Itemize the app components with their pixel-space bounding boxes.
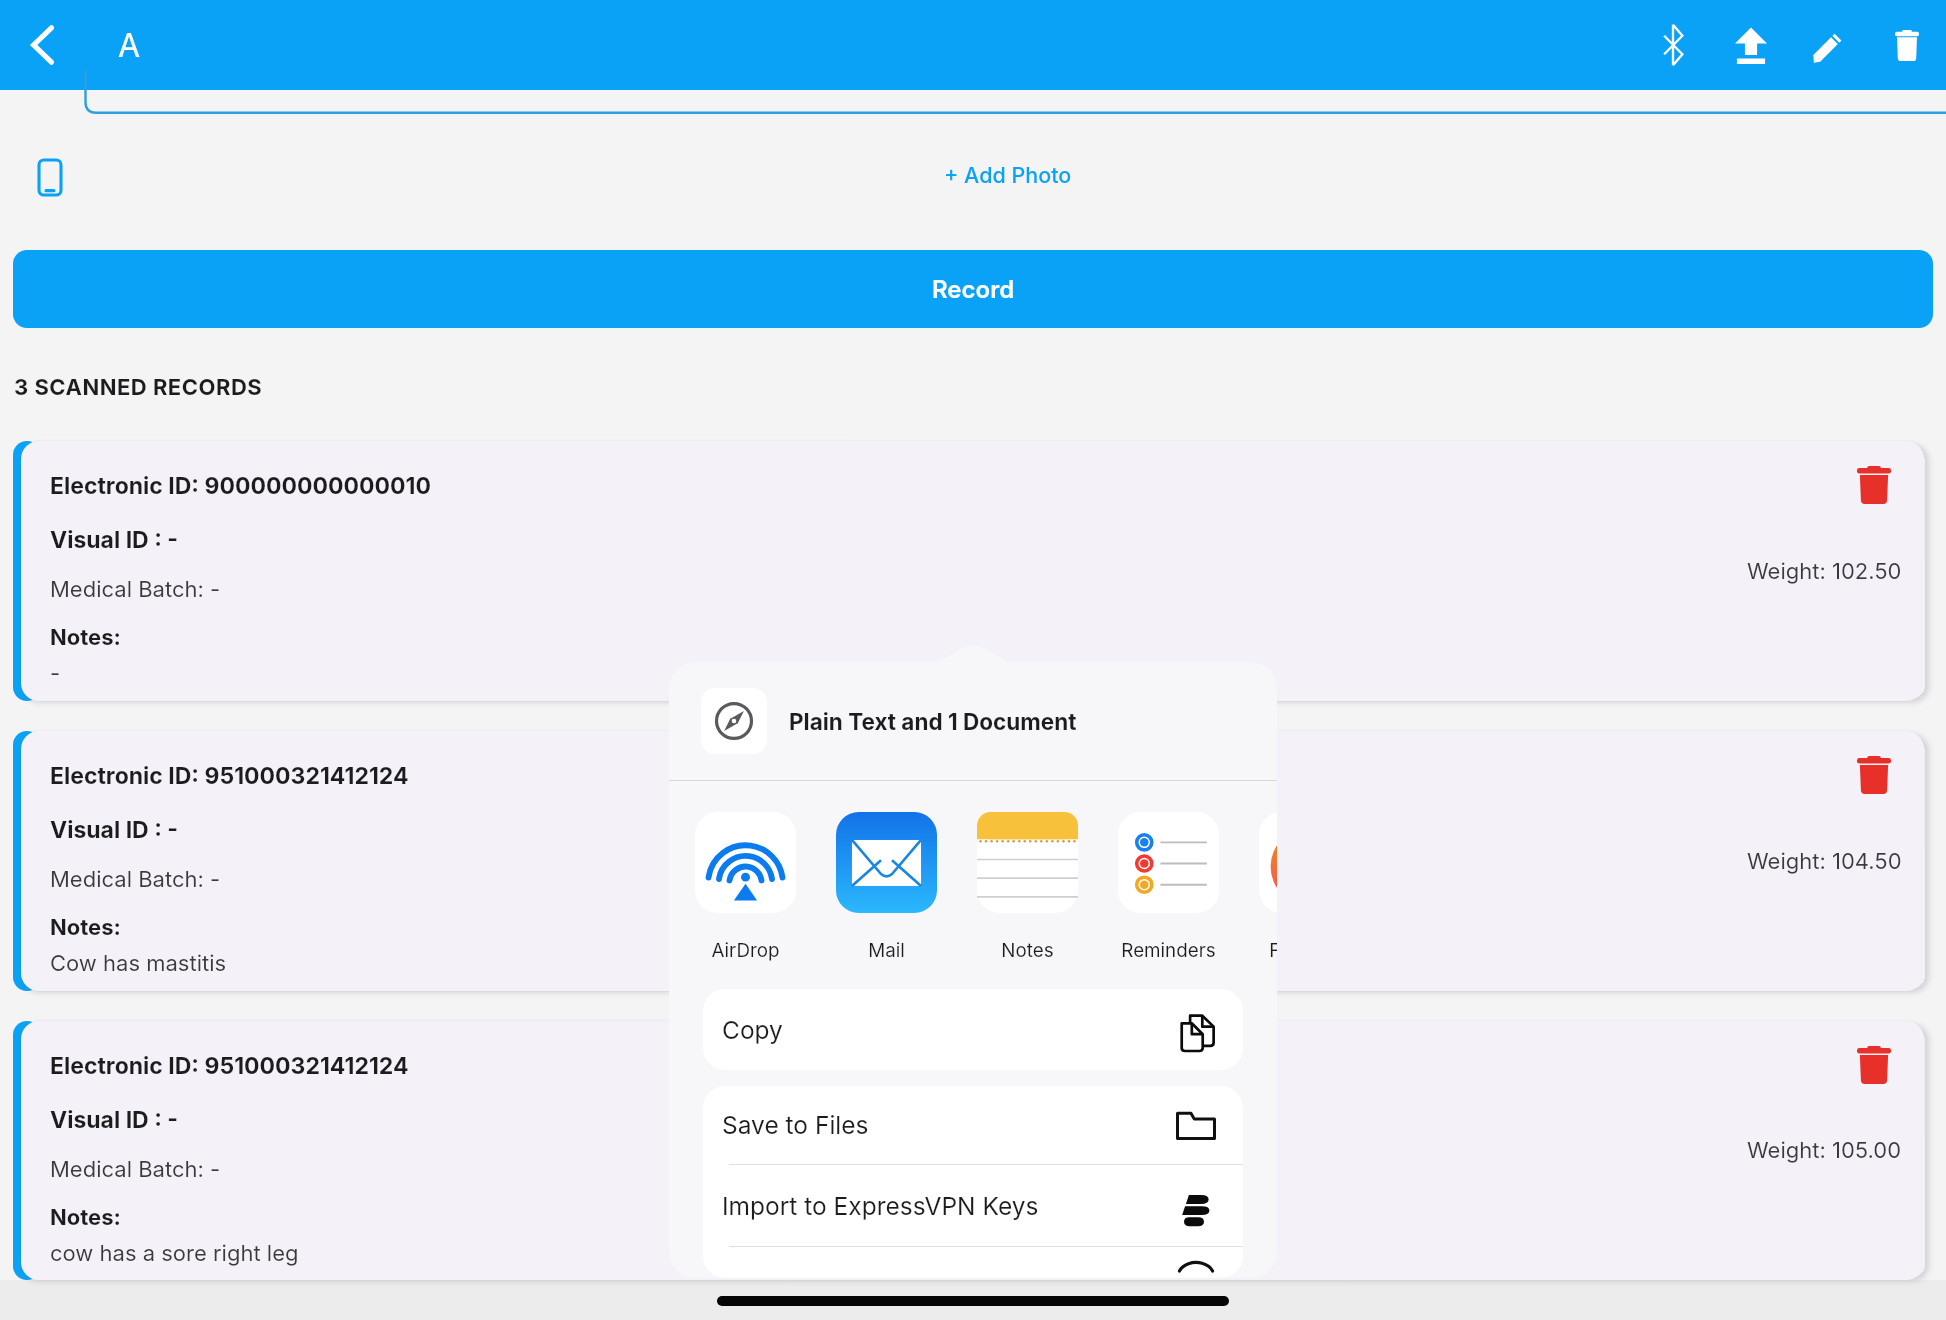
staticText: Weight: 102.50 xyxy=(1747,558,1902,585)
button[interactable]: AirDrop xyxy=(695,812,796,962)
staticText: Electronic ID: 951000321412124 xyxy=(50,762,409,790)
button[interactable]: Freeform xyxy=(1259,812,1277,962)
staticText: Record xyxy=(932,275,1015,304)
button[interactable]: Edit xyxy=(1790,0,1868,90)
button[interactable]: Delete record xyxy=(1844,745,1904,805)
staticText: Notes: xyxy=(50,914,121,941)
staticText: Reminders xyxy=(1121,939,1216,962)
staticText: Visual ID : - xyxy=(50,816,179,844)
button[interactable]: Electronic ID: 900000000000010 xyxy=(21,441,1924,701)
button[interactable]: + Add Photo xyxy=(928,152,1088,198)
button[interactable]: Reminders xyxy=(1118,812,1219,962)
button[interactable]: Delete xyxy=(1868,0,1946,90)
staticText: Import to ExpressVPN Keys xyxy=(722,1191,1039,1221)
staticText: Cow has mastitis xyxy=(50,950,227,977)
staticText: Visual ID : - xyxy=(50,1106,179,1134)
staticText: Notes: xyxy=(50,1204,121,1231)
button[interactable]: Mail xyxy=(836,812,937,962)
button[interactable]: Import to ExpressVPN Keys xyxy=(703,1165,1243,1246)
button[interactable]: Plain Text and 1 Document xyxy=(701,662,1277,780)
button[interactable]: Delete record xyxy=(1844,455,1904,515)
button[interactable]: Bluetooth xyxy=(1634,0,1712,90)
staticText: Medical Batch: - xyxy=(50,576,221,603)
staticText: Weight: 104.50 xyxy=(1747,848,1902,875)
staticText: - xyxy=(50,660,61,687)
button[interactable]: Notes xyxy=(977,812,1078,962)
staticText: Plain Text and 1 Document xyxy=(789,708,1077,735)
staticText: Notes: xyxy=(50,624,121,651)
staticText: Freeform xyxy=(1269,939,1277,962)
staticText: AirDrop xyxy=(711,939,780,962)
button[interactable]: Electronic ID: 951000321412124 xyxy=(21,731,1924,991)
button[interactable]: Device xyxy=(16,143,84,211)
button[interactable]: Back xyxy=(0,0,84,90)
staticText: Electronic ID: 951000321412124 xyxy=(50,1052,409,1080)
staticText: Mail xyxy=(868,939,905,962)
button[interactable]: Copy xyxy=(703,989,1243,1070)
staticText: Notes xyxy=(1001,939,1054,962)
staticText: + Add Photo xyxy=(944,162,1072,188)
staticText: A xyxy=(118,26,141,65)
staticText: Visual ID : - xyxy=(50,526,179,554)
staticText: Weight: 105.00 xyxy=(1747,1137,1902,1164)
button[interactable]: Save to Files xyxy=(703,1086,1243,1164)
button[interactable]: Electronic ID: 951000321412124 xyxy=(21,1021,1924,1280)
staticText: Electronic ID: 900000000000010 xyxy=(50,472,431,500)
staticText: 3 SCANNED RECORDS xyxy=(14,374,263,401)
button[interactable]: Upload xyxy=(1712,0,1790,90)
staticText: cow has a sore right leg xyxy=(50,1240,299,1267)
staticText: Medical Batch: - xyxy=(50,866,221,893)
button[interactable]: Delete record xyxy=(1844,1035,1904,1095)
staticText: Medical Batch: - xyxy=(50,1156,221,1183)
staticText: Copy xyxy=(722,1015,783,1045)
staticText: Save to Files xyxy=(722,1110,869,1140)
button[interactable]: Record xyxy=(13,250,1933,328)
